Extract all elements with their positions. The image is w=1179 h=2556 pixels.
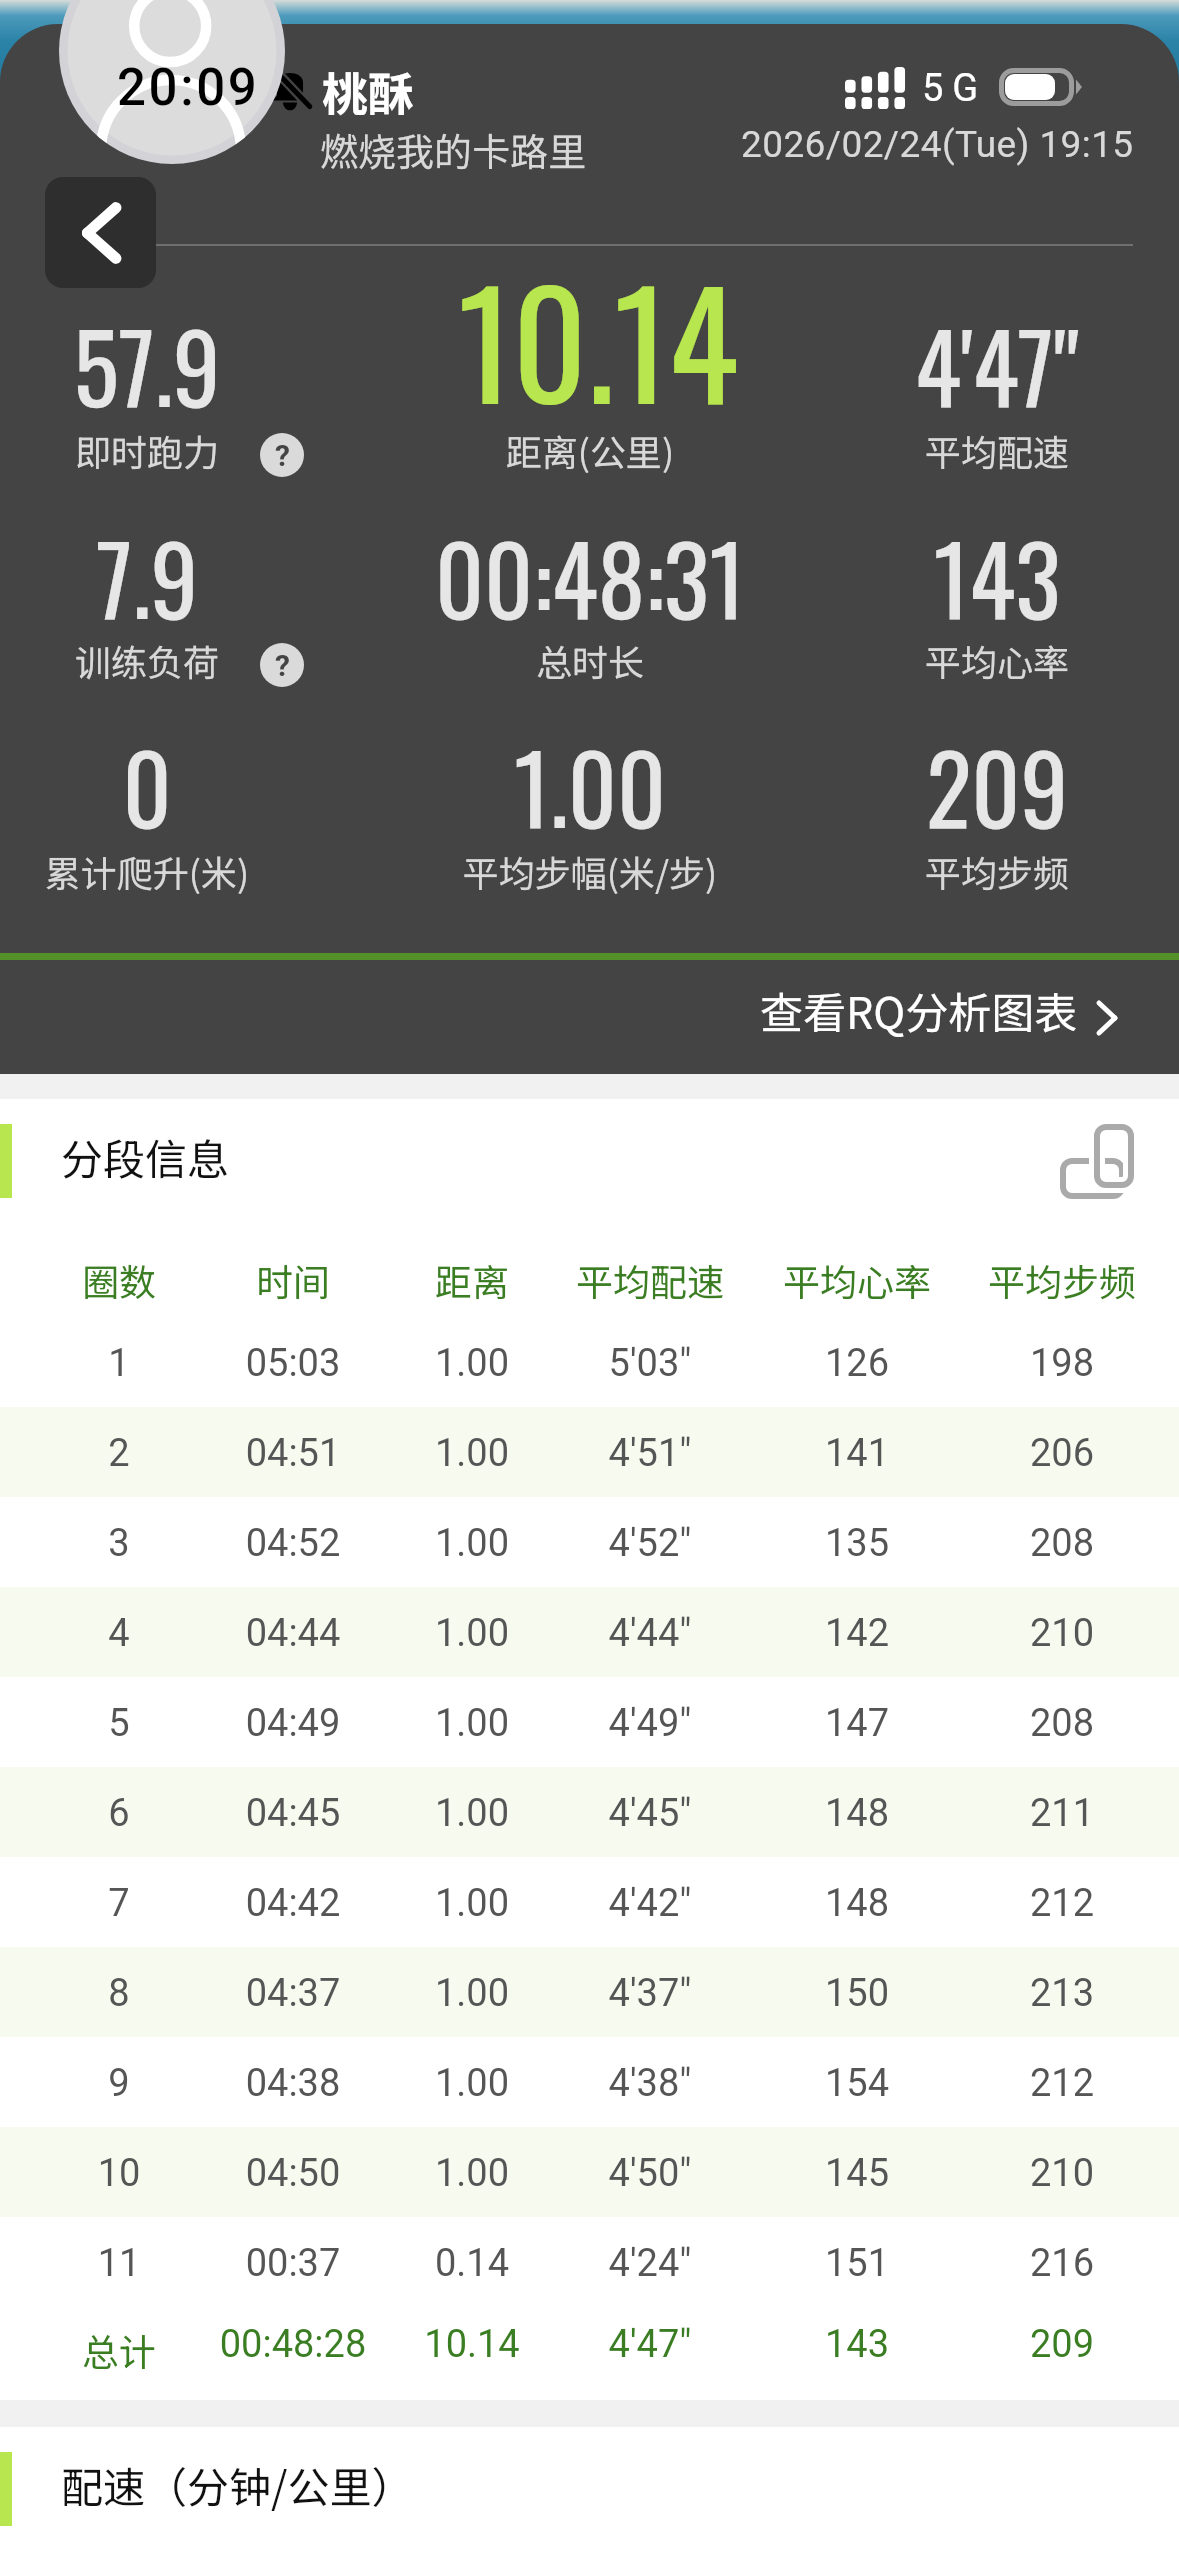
staticText: 208 [922,1701,1179,1746]
button[interactable]: Back [45,177,156,288]
staticText: 154 [717,2061,997,2106]
staticText: 3 [0,1521,259,1566]
staticText: ? [275,648,290,683]
staticText: 04:50 [153,2151,433,2196]
staticText: 126 [717,1341,997,1386]
staticText: 0.14 [332,2241,612,2286]
staticText: 151 [717,2241,997,2286]
staticText: 10 [0,2151,259,2196]
staticText: 4'50" [510,2151,790,2196]
staticText: 1.00 [332,1791,612,1836]
staticText: 206 [922,1431,1179,1476]
staticText: 4'51" [510,1431,790,1476]
staticText: 209 [777,715,1179,856]
button[interactable] [0,1857,1179,1947]
staticText: 135 [717,1521,997,1566]
staticText: 210 [922,1611,1179,1656]
staticText: 平均心率 [717,1253,997,1307]
staticText: 216 [922,2241,1179,2286]
button[interactable]: Profile [59,0,285,164]
staticText: 00:48:28 [153,2322,433,2367]
staticText: 平均配速 [777,424,1179,476]
staticText: 1.00 [332,1881,612,1926]
button[interactable] [0,1407,1179,1497]
staticText: 212 [922,1881,1179,1926]
button[interactable] [0,2127,1179,2217]
staticText: 147 [717,1701,997,1746]
staticText: 4'47" [777,294,1179,435]
staticText: 2026/02/24(Tue) 19:15 [741,123,1134,166]
button[interactable]: Help [260,433,304,477]
staticText: 1.00 [332,1701,612,1746]
staticText: 距离 [332,1253,612,1307]
staticText: 208 [922,1521,1179,1566]
staticText: 5G [922,66,988,111]
staticText: 04:51 [153,1431,433,1476]
button[interactable] [0,1677,1179,1767]
staticText: 04:45 [153,1791,433,1836]
staticText: 配速（分钟/公里） [61,2454,414,2515]
staticText: 00:48:31 [370,506,810,647]
staticText: 8 [0,1971,259,2016]
staticText: 10.14 [378,232,818,445]
staticText: 11 [0,2241,259,2286]
staticText: 平均步频 [922,1253,1179,1307]
staticText: 209 [922,2322,1179,2367]
staticText: 分段信息 [61,1126,230,1187]
staticText: 1.00 [332,1611,612,1656]
staticText: 57.9 [0,294,367,435]
staticText: 5 [0,1701,259,1746]
button[interactable]: Help [260,643,304,687]
button[interactable] [0,1317,1179,1407]
staticText: 4'42" [510,1881,790,1926]
staticText: 212 [922,2061,1179,2106]
button[interactable] [0,1587,1179,1677]
staticText: 7 [0,1881,259,1926]
staticText: 1.00 [332,2061,612,2106]
staticText: 平均配速 [510,1253,790,1307]
staticText: 4'44" [510,1611,790,1656]
staticText: 4'38" [510,2061,790,2106]
staticText: 05:03 [153,1341,433,1386]
staticText: 4'45" [510,1791,790,1836]
staticText: 04:42 [153,1881,433,1926]
staticText: 04:52 [153,1521,433,1566]
staticText: 4'52" [510,1521,790,1566]
staticText: 5'03" [510,1341,790,1386]
button[interactable] [0,2037,1179,2127]
staticText: 平均步频 [777,845,1179,897]
staticText: 1.00 [332,1521,612,1566]
button[interactable] [0,1767,1179,1857]
staticText: 213 [922,1971,1179,2016]
button[interactable] [0,1947,1179,2037]
staticText: 平均步幅(米/步) [370,845,810,897]
staticText: 00:37 [153,2241,433,2286]
button[interactable] [0,2217,1179,2307]
button[interactable]: 查看RQ分析图表 [0,960,1179,1073]
staticText: 150 [717,1971,997,2016]
button[interactable] [0,1497,1179,1587]
staticText: 总计 [0,2323,259,2377]
staticText: 1.00 [332,2151,612,2196]
staticText: 累计爬升(米) [0,845,367,897]
staticText: 148 [717,1881,997,1926]
staticText: 210 [922,2151,1179,2196]
staticText: 10.14 [332,2322,612,2367]
staticText: 查看RQ分析图表 [760,979,1078,1041]
staticText: 04:38 [153,2061,433,2106]
staticText: 4'24" [510,2241,790,2286]
staticText: 9 [0,2061,259,2106]
staticText: 燃烧我的卡路里 [320,122,587,177]
staticText: 7.9 [0,506,367,647]
staticText: 圈数 [0,1253,259,1307]
staticText: 时间 [153,1253,433,1307]
staticText: 4'49" [510,1701,790,1746]
staticText: 04:37 [153,1971,433,2016]
staticText: 145 [717,2151,997,2196]
staticText: ? [275,438,290,473]
staticText: 6 [0,1791,259,1836]
button[interactable]: Rotate screen [1049,1113,1145,1209]
staticText: 04:44 [153,1611,433,1656]
staticText: 0 [0,715,367,856]
staticText: 141 [717,1431,997,1476]
